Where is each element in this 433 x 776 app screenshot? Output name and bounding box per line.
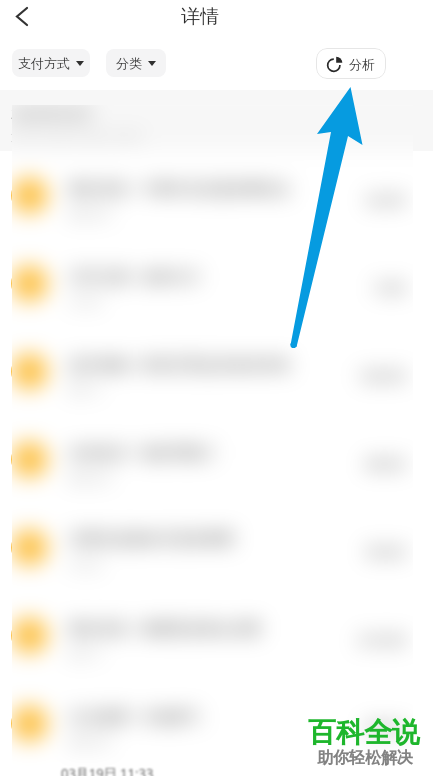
button[interactable]: Back — [3, 0, 41, 35]
button[interactable]: 生活缴费 · 水电燃气 — [0, 679, 433, 767]
button[interactable]: 支付方式 — [12, 49, 90, 77]
button[interactable]: 超市购物 · 家居日用品采购清单表 — [0, 327, 433, 415]
button[interactable]: 餐饮美食 · 午餐外卖优惠套餐组合 — [0, 151, 433, 239]
button[interactable]: 话费充值缴纳月度套餐费 — [0, 503, 433, 591]
staticText: 餐饮美食 · 晚餐朋友聚会消费 — [69, 618, 261, 638]
button[interactable]: 超市购物 · 家居日用品采购清单表 — [0, 327, 433, 415]
staticText: 生活缴费 · 水电燃气 — [69, 706, 201, 726]
button[interactable]: 分类 — [106, 49, 166, 77]
staticText: 生活缴费 · 水电燃气 — [69, 706, 201, 726]
staticText: 餐饮美食 · 晚餐朋友聚会消费 — [69, 618, 261, 638]
button[interactable]: 分析 — [316, 48, 386, 79]
staticText: 89.00 — [366, 717, 405, 737]
staticText: 详情 — [181, 5, 219, 29]
staticText: 休闲娱乐 · 电影票预订 — [69, 442, 216, 462]
staticText: 03月19日 11:33 — [61, 764, 154, 776]
staticText: 助你轻松解决 — [317, 748, 413, 768]
staticText: 餐饮美食 · 午餐外卖优惠套餐组合 — [69, 178, 291, 198]
staticText: 超市购物 · 家居日用品采购清单表 — [69, 354, 291, 374]
button[interactable]: 日常交通 · 地铁出行 — [0, 239, 433, 327]
button[interactable]: 日常交通 · 地铁出行 — [0, 239, 433, 327]
staticText: 分析 — [349, 56, 375, 72]
staticText: 支付方式 — [18, 55, 70, 71]
staticText: 百科全说 — [308, 715, 420, 750]
button[interactable]: 生活缴费 · 水电燃气 — [0, 679, 433, 767]
staticText: 分类 — [116, 55, 142, 71]
staticText: 日常交通 · 地铁出行 — [69, 266, 201, 286]
button[interactable]: 餐饮美食 · 晚餐朋友聚会消费 — [0, 591, 433, 679]
staticText: 超市购物 · 家居日用品采购清单表 — [69, 354, 291, 374]
button[interactable]: 话费充值缴纳月度套餐费 — [0, 503, 433, 591]
button[interactable]: 餐饮美食 · 晚餐朋友聚会消费 — [0, 591, 433, 679]
staticText: 128.50 — [358, 365, 405, 385]
staticText: 餐饮美食 · 午餐外卖优惠套餐组合 — [69, 178, 291, 198]
button[interactable]: 休闲娱乐 · 电影票预订 — [0, 415, 433, 503]
staticText: 话费充值缴纳月度套餐费 — [69, 530, 234, 549]
staticText: 休闲娱乐 · 电影票预订 — [69, 442, 216, 462]
button[interactable]: 休闲娱乐 · 电影票预订 — [0, 415, 433, 503]
staticText: 128.50 — [358, 365, 405, 385]
button[interactable]: 餐饮美食 · 午餐外卖优惠套餐组合 — [0, 151, 433, 239]
staticText: 2023年03月 — [11, 103, 93, 123]
staticText: 89.00 — [366, 717, 405, 737]
staticText: 日常交通 · 地铁出行 — [69, 266, 201, 286]
staticText: 2023年03月 — [11, 103, 93, 123]
staticText: 话费充值缴纳月度套餐费 — [69, 530, 234, 549]
